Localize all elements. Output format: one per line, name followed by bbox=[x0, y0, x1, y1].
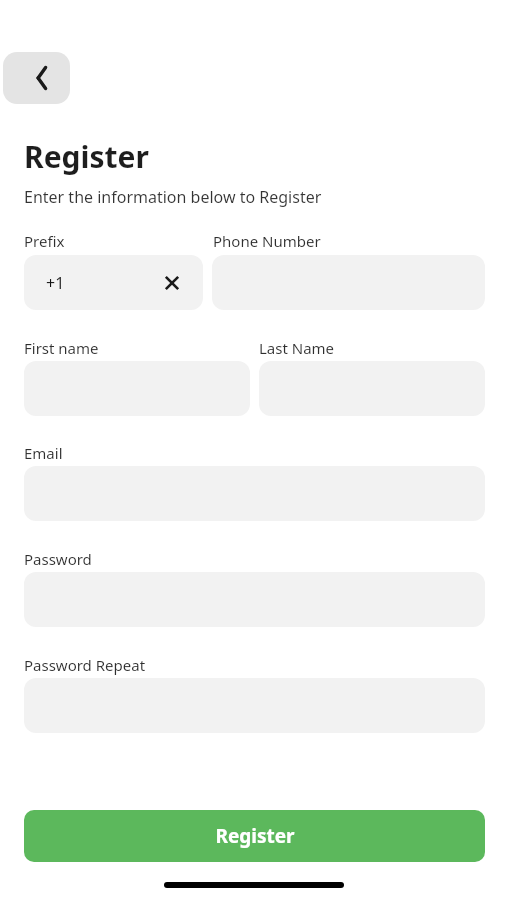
button[interactable]: Back bbox=[3, 52, 70, 104]
staticText: Email bbox=[24, 443, 63, 463]
button[interactable]: Register bbox=[24, 810, 485, 862]
staticText: Register bbox=[215, 823, 295, 849]
button[interactable]: Clear prefix bbox=[161, 272, 183, 294]
staticText: Password bbox=[24, 549, 92, 569]
staticText: Enter the information below to Register bbox=[24, 186, 322, 208]
staticText: Phone Number bbox=[213, 231, 321, 251]
staticText: Register bbox=[24, 136, 149, 177]
staticText: Password Repeat bbox=[24, 655, 146, 675]
staticText: First name bbox=[24, 338, 99, 358]
button[interactable]: +1 bbox=[24, 255, 203, 310]
staticText: Last Name bbox=[259, 338, 335, 358]
staticText: Prefix bbox=[24, 231, 65, 251]
staticText: +1 bbox=[46, 272, 65, 294]
